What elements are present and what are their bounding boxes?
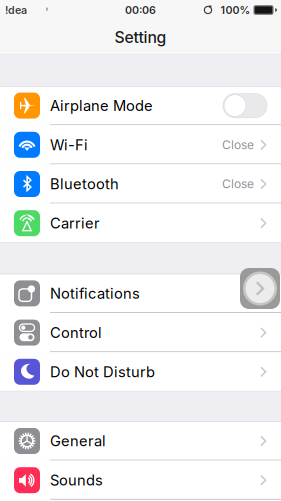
staticText: Setting	[114, 28, 166, 47]
button[interactable]: Do Not Disturb	[0, 352, 281, 391]
staticText: !dea	[5, 3, 27, 16]
staticText: Carrier	[50, 214, 100, 232]
button[interactable]: General	[0, 421, 281, 461]
button[interactable]: Bluetooth	[0, 164, 281, 204]
staticText: Wi-Fi	[50, 136, 88, 154]
button[interactable]: Wi-Fi	[0, 125, 281, 164]
staticText: Control	[50, 324, 102, 341]
staticText: Airplane Mode	[50, 97, 153, 114]
staticText: Bluetooth	[50, 175, 119, 193]
button[interactable]: Notifications	[0, 274, 281, 313]
staticText: Close	[222, 137, 254, 152]
staticText: Sounds	[50, 471, 103, 489]
staticText: Close	[222, 177, 254, 191]
staticText: 100%	[220, 3, 250, 16]
button[interactable]: Carrier	[0, 204, 281, 243]
staticText: 00:06	[125, 3, 156, 16]
button[interactable]: Control	[0, 313, 281, 352]
staticText: General	[50, 432, 106, 450]
staticText: Do Not Disturb	[50, 363, 155, 381]
button[interactable]: Sounds	[0, 461, 281, 500]
button[interactable]: Airplane Mode	[0, 86, 281, 125]
staticText: Notifications	[50, 284, 140, 302]
